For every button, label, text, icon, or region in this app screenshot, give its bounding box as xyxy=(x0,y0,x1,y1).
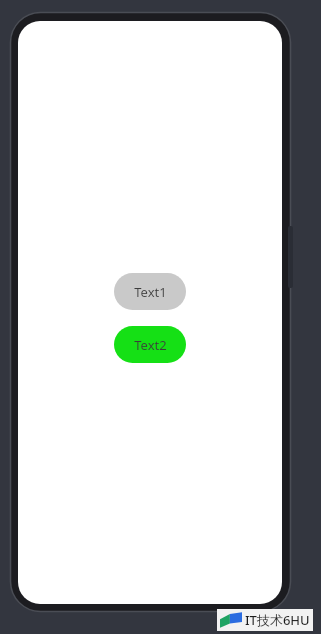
staticText: Text2 xyxy=(134,336,167,354)
button[interactable]: Text2 xyxy=(114,326,186,363)
staticText: Text1 xyxy=(134,283,167,301)
staticText: IT技术6HU xyxy=(245,611,310,629)
button[interactable]: Text1 xyxy=(114,273,186,310)
